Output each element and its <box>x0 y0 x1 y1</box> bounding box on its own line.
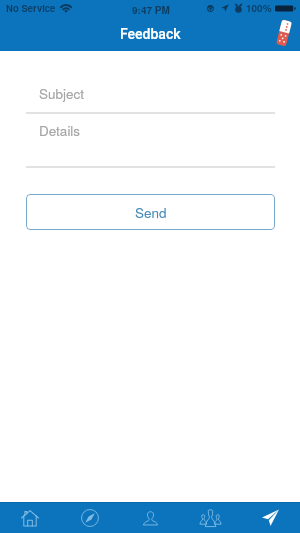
button[interactable]: Subject <box>26 85 275 114</box>
staticText: Send <box>135 203 167 222</box>
button[interactable]: Groups <box>180 502 240 533</box>
staticText: Subject <box>39 84 85 103</box>
staticText: 9:47 PM <box>132 3 170 17</box>
button[interactable]: Home <box>0 502 60 533</box>
staticText: No Service <box>6 1 56 15</box>
staticText: 100% <box>246 1 272 15</box>
button[interactable]: Send feedback <box>240 502 300 533</box>
button[interactable]: App logo <box>270 19 298 47</box>
button[interactable]: Send <box>26 194 275 230</box>
button[interactable]: Explore <box>60 502 120 533</box>
staticText: Details <box>39 121 81 140</box>
button[interactable]: Details <box>26 114 275 168</box>
button[interactable]: Profile <box>120 502 180 533</box>
staticText: Feedback <box>120 26 181 42</box>
